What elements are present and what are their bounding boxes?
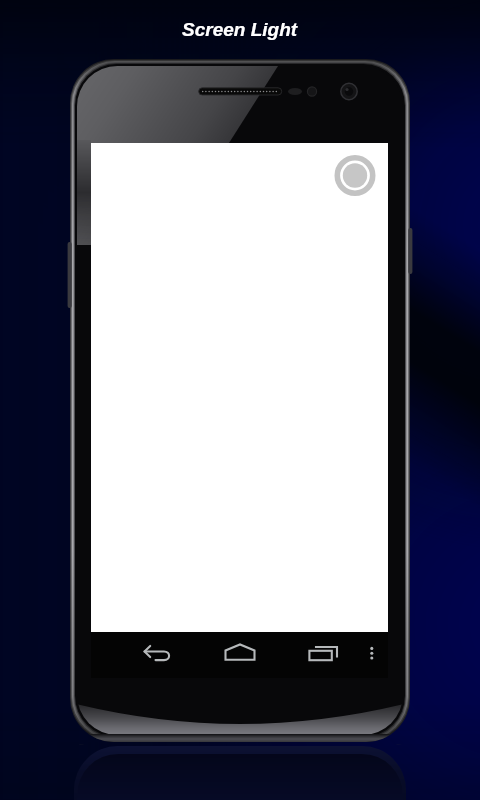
staticText: Screen Light (182, 19, 298, 40)
button[interactable]: Toggle screen light (332, 153, 376, 197)
